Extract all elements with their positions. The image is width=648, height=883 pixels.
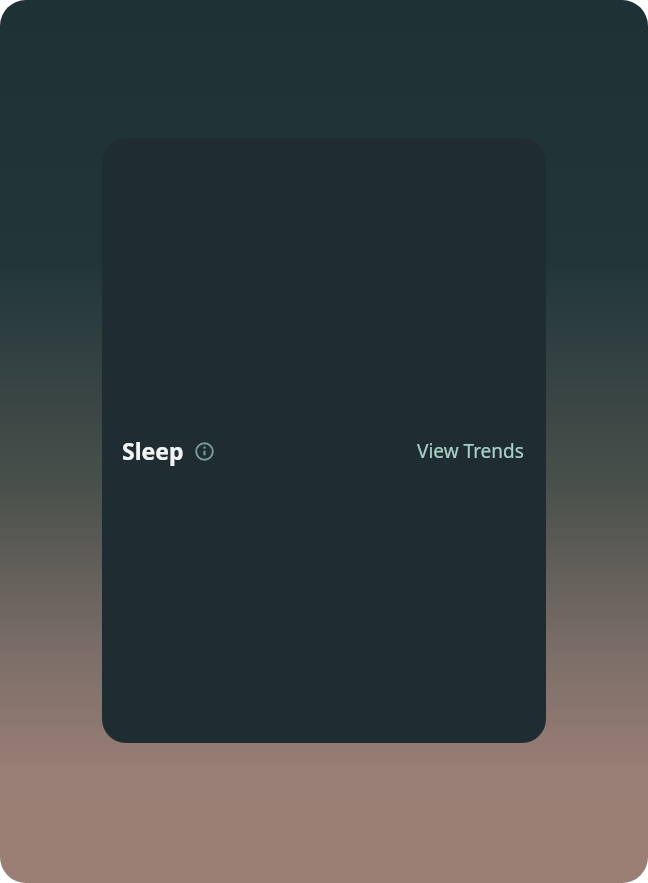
staticText: Sleep (122, 435, 184, 466)
button[interactable]: About sleep (193, 440, 215, 462)
button[interactable]: View Trends (415, 436, 526, 466)
staticText: View Trends (417, 438, 524, 464)
